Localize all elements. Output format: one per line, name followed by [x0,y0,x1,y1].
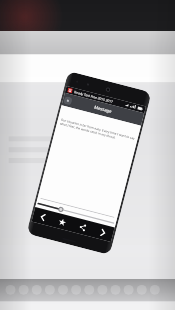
button[interactable]: Share [70,217,94,237]
button[interactable]: Navigate up [62,93,144,126]
button[interactable]: Previous [31,207,55,226]
button[interactable]: Navigate up [63,96,73,106]
staticText: Ready Text Free 2015 2017 [74,90,113,104]
button[interactable]: Favourite [51,212,74,231]
staticText: Our situation is far from easy. Every ti… [59,118,135,144]
button[interactable] [37,199,115,227]
staticText: Message [93,105,112,115]
button[interactable]: Next [91,222,115,242]
